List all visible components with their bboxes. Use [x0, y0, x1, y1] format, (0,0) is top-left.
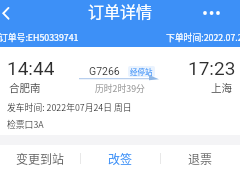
staticText: 14:44	[7, 57, 55, 79]
button[interactable]: 变更到站	[0, 147, 80, 169]
button[interactable]: Back	[0, 0, 22, 28]
staticText: 上海	[211, 80, 232, 95]
staticText: 下单时间:2022.07.22	[166, 31, 240, 44]
staticText: 发车时间: 2022年07月24日 周日	[7, 101, 132, 114]
staticText: 订单号:EH50339741	[0, 31, 79, 44]
button[interactable]: More options	[196, 1, 226, 25]
button[interactable]: 经停站	[128, 66, 155, 77]
button[interactable]: 改签	[81, 147, 160, 169]
staticText: 历时2时39分	[95, 82, 145, 95]
staticText: 退票	[188, 150, 213, 167]
staticText: 变更到站	[16, 150, 65, 167]
staticText: 改签	[108, 150, 133, 167]
button[interactable]: 退票	[161, 147, 240, 169]
staticText: 17:23	[188, 57, 236, 79]
staticText: 合肥南	[9, 80, 41, 95]
staticText: 检票口3A	[7, 118, 44, 131]
staticText: 订单详情	[88, 0, 153, 22]
staticText: G7266	[89, 65, 120, 77]
staticText: 经停站	[130, 66, 153, 77]
